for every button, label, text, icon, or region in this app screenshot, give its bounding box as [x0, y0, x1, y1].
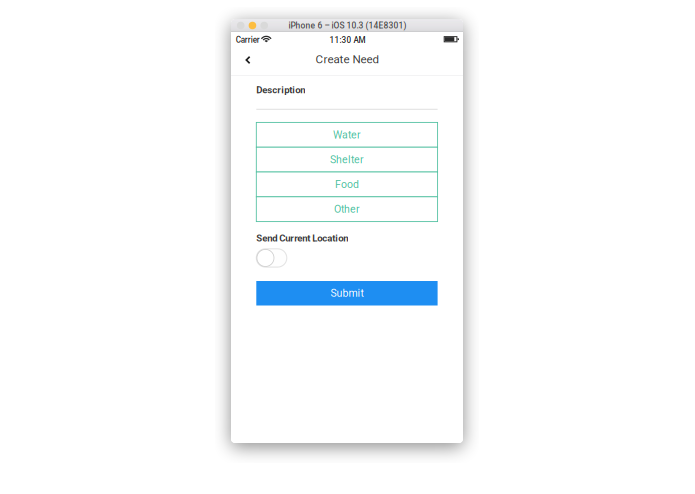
staticText: 11:30 AM — [329, 35, 365, 45]
button[interactable]: Back — [236, 50, 260, 70]
staticText: Create Need — [315, 53, 379, 66]
button[interactable]: Submit — [256, 281, 438, 305]
button[interactable]: Shelter — [256, 147, 438, 172]
staticText: Food — [335, 178, 359, 190]
staticText: Send Current Location — [256, 233, 348, 244]
button[interactable]: Other — [256, 197, 438, 222]
staticText: Description — [256, 84, 305, 96]
staticText: Submit — [330, 287, 363, 299]
staticText: Carrier — [236, 35, 260, 45]
button[interactable]: Water — [256, 122, 438, 147]
button[interactable]: Send Current Location — [256, 249, 287, 267]
staticText: iPhone 6 – iOS 10.3 (14E8301) — [288, 21, 406, 30]
staticText: Other — [334, 203, 360, 215]
button[interactable]: Food — [256, 172, 438, 197]
staticText: Shelter — [330, 153, 364, 166]
staticText: Water — [333, 129, 361, 141]
